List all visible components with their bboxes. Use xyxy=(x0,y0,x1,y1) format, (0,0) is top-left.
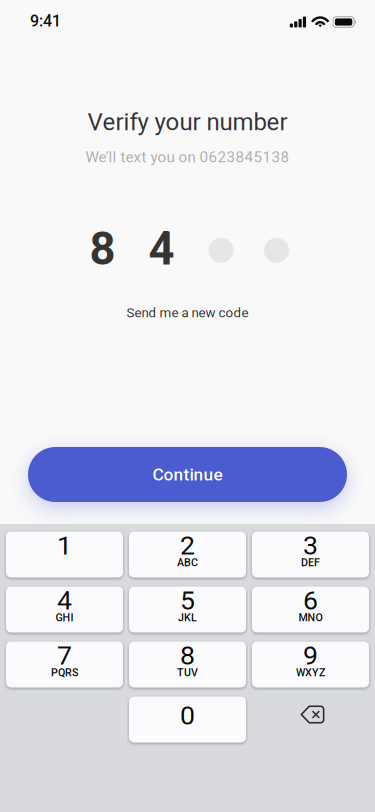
staticText: 9:41 xyxy=(30,12,61,30)
staticText: 5 xyxy=(180,585,195,616)
staticText: 8 xyxy=(89,222,115,275)
button[interactable]: 0 xyxy=(129,696,246,743)
staticText: PQRS xyxy=(51,666,78,679)
staticText: JKL xyxy=(178,611,197,624)
staticText: 8 xyxy=(180,640,195,671)
staticText: MNO xyxy=(298,611,322,624)
staticText: 7 xyxy=(57,640,72,671)
staticText: ABC xyxy=(177,556,198,569)
staticText: GHI xyxy=(55,611,73,624)
button[interactable]: 9 xyxy=(252,641,369,688)
staticText: We’ll text you on 0623845138 xyxy=(85,148,289,166)
button[interactable]: 8 xyxy=(129,641,246,688)
button[interactable]: Continue xyxy=(28,447,347,502)
staticText: 6 xyxy=(303,585,318,616)
button[interactable]: Delete xyxy=(252,696,369,743)
button[interactable]: 7 xyxy=(6,641,123,688)
staticText: 2 xyxy=(180,530,195,561)
staticText: 4 xyxy=(148,222,174,275)
staticText: 3 xyxy=(303,530,318,561)
button[interactable]: 6 xyxy=(252,586,369,633)
button[interactable]: 2 xyxy=(129,531,246,578)
button[interactable]: 1 xyxy=(6,531,123,578)
staticText: Continue xyxy=(152,464,222,485)
staticText: WXYZ xyxy=(296,666,325,679)
button[interactable]: 3 xyxy=(252,531,369,578)
staticText: 9 xyxy=(303,640,318,671)
staticText: DEF xyxy=(301,556,320,569)
button[interactable]: 4 xyxy=(6,586,123,633)
staticText: 1 xyxy=(57,530,72,561)
staticText: TUV xyxy=(177,666,198,679)
button[interactable]: 5 xyxy=(129,586,246,633)
staticText: Verify your number xyxy=(87,108,287,136)
staticText: Send me a new code xyxy=(126,305,248,320)
button[interactable]: Send me a new code xyxy=(112,298,262,327)
staticText: 0 xyxy=(180,700,195,731)
staticText: 4 xyxy=(57,585,72,616)
